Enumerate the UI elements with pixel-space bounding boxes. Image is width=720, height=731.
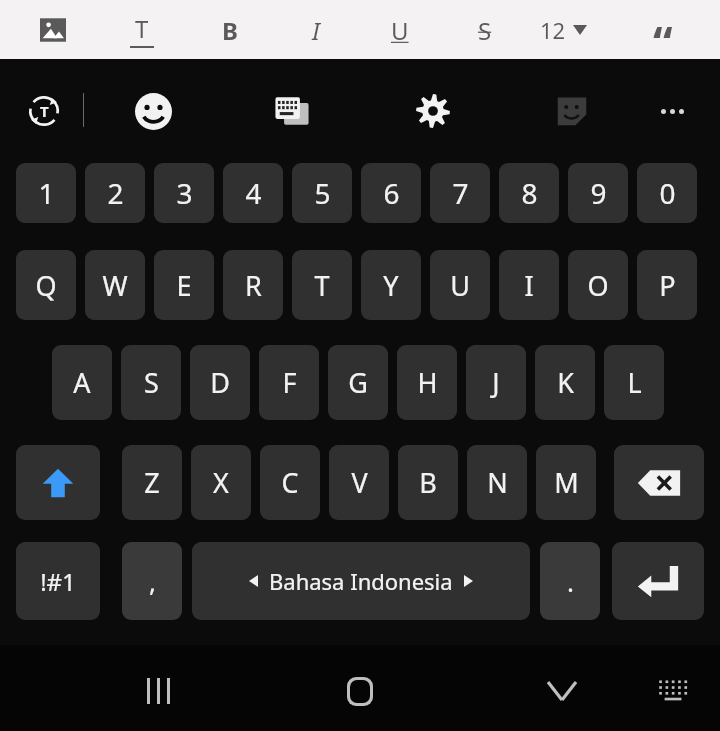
button[interactable]: A [52, 345, 112, 420]
button[interactable]: N [467, 445, 527, 520]
staticText: 7 [452, 174, 469, 212]
button[interactable]: Z [122, 445, 182, 520]
button[interactable]: B [398, 445, 458, 520]
staticText: Z [144, 464, 160, 501]
staticText: M [554, 464, 579, 501]
button[interactable]: M [536, 445, 596, 520]
button[interactable]: S [121, 345, 181, 420]
button[interactable]: , [122, 542, 182, 620]
button[interactable]: Recent apps [130, 663, 186, 719]
button[interactable]: Shift [16, 445, 100, 520]
button[interactable]: 3 [154, 163, 214, 223]
staticText: B [419, 464, 437, 501]
button[interactable]: U [380, 12, 420, 48]
button[interactable]: S [465, 12, 505, 48]
button[interactable]: R [223, 250, 283, 320]
button[interactable]: 12 [540, 14, 587, 46]
staticText: L [627, 364, 642, 401]
staticText: T [314, 267, 330, 304]
button[interactable]: I [296, 12, 336, 48]
staticText: 6 [383, 174, 400, 212]
button[interactable]: Insert image [37, 14, 69, 46]
button[interactable]: Emoji [129, 87, 177, 135]
button[interactable]: T [292, 250, 352, 320]
button[interactable]: More options [648, 87, 696, 135]
staticText: R [245, 267, 262, 304]
button[interactable]: G [328, 345, 388, 420]
staticText: 3 [176, 174, 193, 212]
button[interactable]: P [637, 250, 697, 320]
button[interactable]: Backspace [614, 445, 704, 520]
button[interactable]: H [397, 345, 457, 420]
button[interactable]: Q [16, 250, 76, 320]
staticText: Bahasa Indonesia [269, 566, 453, 596]
staticText: !#1 [40, 565, 76, 598]
staticText: U [450, 267, 470, 304]
staticText: T [135, 12, 149, 45]
button[interactable]: L [604, 345, 664, 420]
button[interactable]: !#1 [16, 542, 100, 620]
staticText: C [281, 464, 299, 501]
button[interactable]: I [499, 250, 559, 320]
button[interactable]: 8 [499, 163, 559, 223]
staticText: N [487, 464, 508, 501]
staticText: V [351, 464, 368, 501]
staticText: U [391, 14, 409, 47]
staticText: B [222, 14, 238, 47]
button[interactable]: 4 [223, 163, 283, 223]
button[interactable]: Hide keyboard [534, 663, 590, 719]
button[interactable]: Home [332, 663, 388, 719]
button[interactable]: T [122, 12, 162, 48]
button[interactable]: K [535, 345, 595, 420]
button[interactable]: C [260, 445, 320, 520]
staticText: 12 [540, 15, 566, 45]
staticText: 2 [107, 174, 124, 212]
button[interactable]: D [190, 345, 250, 420]
button[interactable]: W [85, 250, 145, 320]
staticText: H [417, 364, 438, 401]
staticText: W [102, 267, 128, 304]
staticText: Q [35, 267, 57, 304]
staticText: “ [653, 12, 673, 48]
button[interactable]: Keyboard modes [268, 87, 316, 135]
staticText: . [567, 564, 574, 599]
button[interactable]: X [191, 445, 251, 520]
staticText: , [149, 564, 156, 599]
button[interactable]: Change keyboard [645, 663, 701, 719]
staticText: P [659, 267, 676, 304]
button[interactable]: Y [361, 250, 421, 320]
staticText: S [478, 14, 492, 47]
button[interactable]: Quote [645, 12, 681, 48]
button[interactable]: J [466, 345, 526, 420]
button[interactable]: O [568, 250, 628, 320]
button[interactable]: Settings [409, 87, 457, 135]
button[interactable]: F [259, 345, 319, 420]
staticText: 9 [590, 174, 607, 212]
button[interactable]: Stickers [548, 87, 596, 135]
staticText: 1 [38, 174, 55, 212]
button[interactable]: 6 [361, 163, 421, 223]
button[interactable]: 2 [85, 163, 145, 223]
button[interactable]: Translate [20, 87, 68, 135]
staticText: J [492, 364, 500, 401]
button[interactable]: 1 [16, 163, 76, 223]
staticText: E [176, 267, 192, 304]
staticText: G [348, 364, 368, 401]
button[interactable]: 0 [637, 163, 697, 223]
button[interactable]: V [329, 445, 389, 520]
staticText: T [40, 101, 49, 121]
staticText: 4 [245, 174, 262, 212]
staticText: F [282, 364, 297, 401]
staticText: O [587, 267, 609, 304]
button[interactable]: 9 [568, 163, 628, 223]
button[interactable]: B [210, 12, 250, 48]
button[interactable]: 5 [292, 163, 352, 223]
button[interactable]: U [430, 250, 490, 320]
button[interactable]: Bahasa Indonesia [192, 542, 530, 620]
button[interactable]: E [154, 250, 214, 320]
button[interactable]: Enter [612, 542, 704, 620]
button[interactable]: . [540, 542, 600, 620]
button[interactable]: 7 [430, 163, 490, 223]
staticText: D [210, 364, 230, 401]
staticText: Y [383, 267, 399, 304]
